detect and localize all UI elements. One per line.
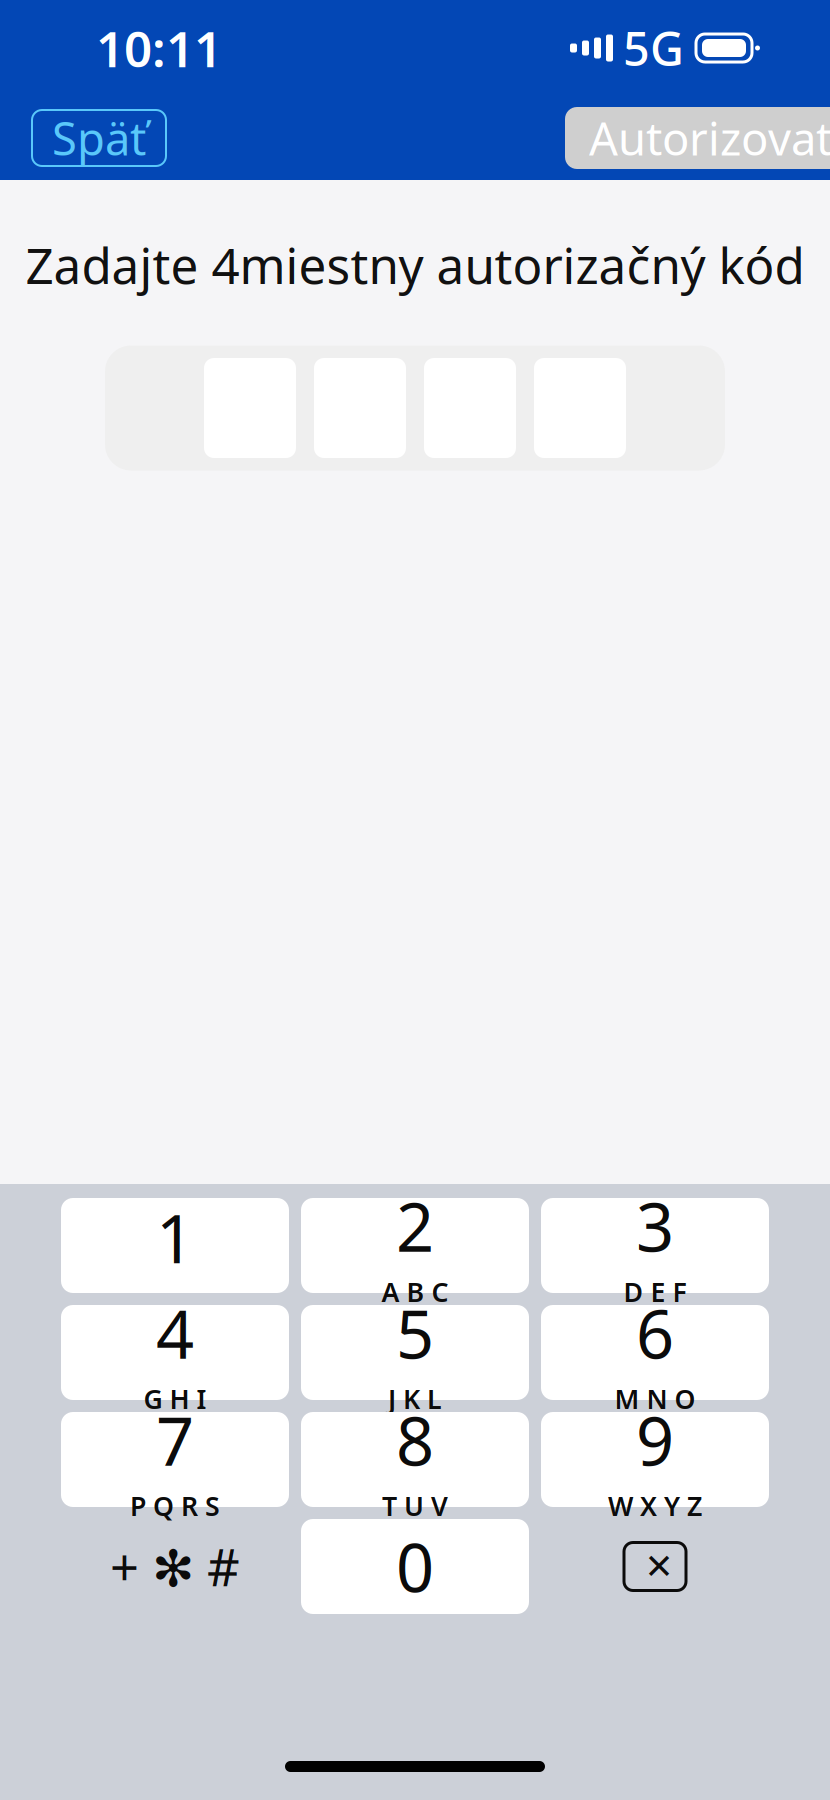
button[interactable]: 5: [301, 1305, 529, 1400]
staticText: 2: [396, 1181, 434, 1270]
button[interactable]: 9: [541, 1412, 769, 1507]
staticText: M N O: [614, 1381, 695, 1416]
staticText: 1: [156, 1193, 194, 1282]
button[interactable]: 4: [61, 1305, 289, 1400]
staticText: 5G: [623, 17, 684, 79]
button[interactable]: 7: [61, 1412, 289, 1507]
button[interactable]: 6: [541, 1305, 769, 1400]
staticText: 0: [396, 1522, 434, 1611]
staticText: Späť: [52, 108, 146, 168]
button[interactable]: Delete: [541, 1519, 769, 1614]
staticText: T U V: [382, 1488, 448, 1523]
staticText: W X Y Z: [608, 1488, 702, 1523]
staticText: 8: [396, 1395, 434, 1484]
staticText: Autorizovať: [589, 108, 830, 168]
staticText: 9: [636, 1395, 674, 1484]
staticText: 6: [636, 1288, 674, 1377]
staticText: 7: [156, 1395, 194, 1484]
button[interactable]: 8: [301, 1412, 529, 1507]
staticText: 4: [156, 1288, 194, 1377]
button[interactable]: 1: [61, 1198, 289, 1293]
staticText: 10:11: [96, 15, 222, 81]
staticText: 3: [636, 1181, 674, 1270]
button[interactable]: Autorizovať: [565, 107, 830, 169]
staticText: G H I: [143, 1381, 206, 1416]
button[interactable]: 2: [301, 1198, 529, 1293]
staticText: A B C: [381, 1274, 448, 1309]
button[interactable]: 0: [301, 1519, 529, 1614]
button[interactable]: 3: [541, 1198, 769, 1293]
staticText: J K L: [388, 1381, 442, 1416]
staticText: P Q R S: [130, 1488, 220, 1523]
staticText: 5: [396, 1288, 434, 1377]
button[interactable]: Plus asterisk hash: [61, 1519, 289, 1614]
staticText: ✕: [644, 1547, 673, 1586]
staticText: + ✻ #: [110, 1533, 240, 1600]
button[interactable]: Späť: [32, 110, 166, 166]
staticText: D E F: [623, 1274, 686, 1309]
staticText: Zadajte 4miestny autorizačný kód: [25, 232, 804, 297]
